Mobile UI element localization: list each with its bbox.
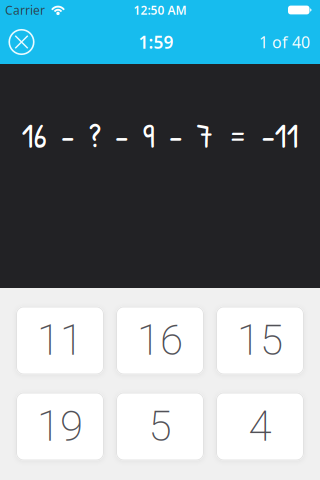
staticText: 15 <box>237 316 283 365</box>
staticText: 12:50 AM <box>133 2 186 18</box>
staticText: 7 <box>196 113 213 158</box>
staticText: 16 <box>21 113 46 158</box>
button[interactable]: 16 <box>116 306 204 374</box>
staticText: 19 <box>37 402 83 451</box>
staticText: - <box>115 113 128 158</box>
staticText: ? <box>88 113 100 158</box>
button[interactable]: 11 <box>16 306 104 374</box>
button[interactable]: Close <box>0 28 35 55</box>
staticText: 4 <box>248 402 271 451</box>
staticText: Carrier <box>5 2 45 18</box>
button[interactable]: 4 <box>216 392 304 460</box>
staticText: - <box>169 113 182 158</box>
staticText: 11 <box>37 316 83 365</box>
staticText: = <box>228 113 247 158</box>
button[interactable]: 15 <box>216 306 304 374</box>
button[interactable]: 5 <box>116 392 204 460</box>
staticText: 1 of 40 <box>259 31 310 53</box>
staticText: -11 <box>261 113 298 158</box>
staticText: 9 <box>142 113 154 158</box>
staticText: 1:59 <box>138 30 173 53</box>
button[interactable]: 19 <box>16 392 104 460</box>
staticText: 16 <box>137 316 183 365</box>
staticText: - <box>61 113 74 158</box>
staticText: 5 <box>148 402 171 451</box>
